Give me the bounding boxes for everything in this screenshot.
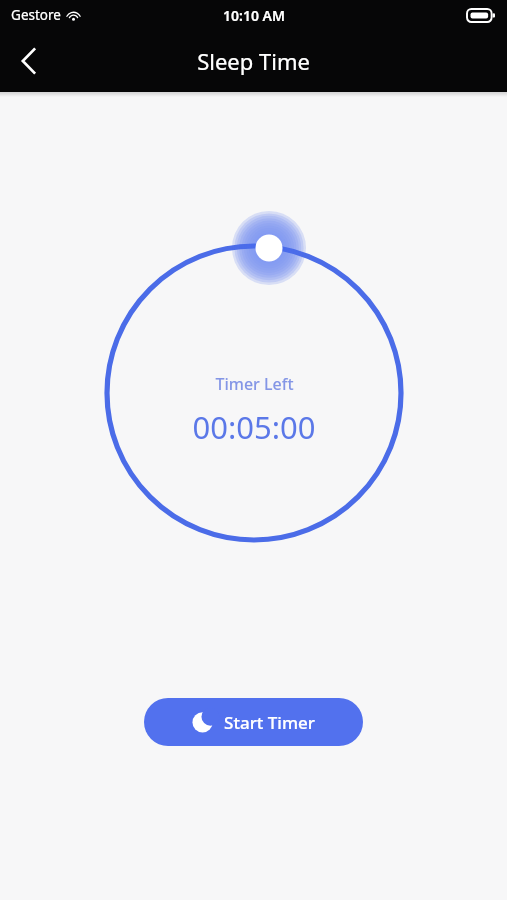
button[interactable]: Back xyxy=(3,36,53,86)
staticText: Timer Left xyxy=(215,373,294,395)
staticText: 00:05:00 xyxy=(192,406,316,448)
staticText: 10:10 AM xyxy=(223,6,285,25)
staticText: Start Timer xyxy=(224,711,315,734)
staticText: Gestore xyxy=(11,6,61,24)
staticText: Sleep Time xyxy=(197,46,310,76)
button[interactable]: Start Timer xyxy=(144,698,363,746)
